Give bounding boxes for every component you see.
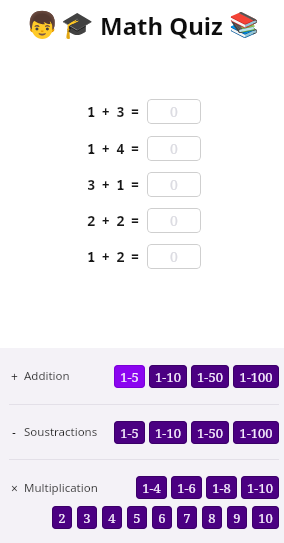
staticText: 4 xyxy=(108,509,116,527)
button[interactable]: 1-100 xyxy=(233,421,279,444)
button[interactable]: 1-10 xyxy=(149,365,187,388)
staticText: 2 xyxy=(58,509,66,527)
staticText: 0 xyxy=(170,102,178,121)
button[interactable]: 1-50 xyxy=(191,421,229,444)
button[interactable]: Answer field xyxy=(147,208,201,233)
button[interactable]: 7 xyxy=(177,506,197,529)
button[interactable]: 1-10 xyxy=(241,476,279,499)
button[interactable]: 9 xyxy=(227,506,247,529)
staticText: 1-5 xyxy=(120,368,139,386)
button[interactable]: 2 xyxy=(52,506,72,529)
button[interactable]: 1-100 xyxy=(233,365,279,388)
staticText: + xyxy=(11,368,18,384)
staticText: 1-100 xyxy=(239,368,273,386)
staticText: 9 xyxy=(233,509,241,527)
staticText: 0 xyxy=(170,247,178,266)
staticText: 1-4 xyxy=(142,479,161,497)
staticText: Addition xyxy=(24,368,70,384)
button[interactable]: 4 xyxy=(102,506,122,529)
staticText: 7 xyxy=(183,509,191,527)
staticText: 📚 xyxy=(229,11,259,39)
staticText: 1-5 xyxy=(120,424,139,442)
button[interactable]: 1-8 xyxy=(206,476,237,499)
staticText: 🎓 xyxy=(61,10,94,40)
button[interactable]: Answer field xyxy=(147,99,201,124)
button[interactable]: 1-4 xyxy=(136,476,167,499)
staticText: 10 xyxy=(258,509,273,527)
button[interactable]: 1-5 xyxy=(114,365,145,388)
staticText: 2 + 2 = xyxy=(87,211,139,230)
button[interactable]: 8 xyxy=(202,506,222,529)
button[interactable]: 3 xyxy=(77,506,97,529)
button[interactable]: Answer field xyxy=(147,136,201,161)
staticText: - xyxy=(12,424,16,440)
staticText: 1-6 xyxy=(177,479,196,497)
staticText: Math Quiz xyxy=(100,9,223,42)
button[interactable]: 1-6 xyxy=(171,476,202,499)
button[interactable]: Answer field xyxy=(147,172,201,197)
button[interactable]: 1-5 xyxy=(114,421,145,444)
staticText: Soustractions xyxy=(24,424,98,440)
staticText: 1-8 xyxy=(212,479,231,497)
staticText: 0 xyxy=(170,139,178,158)
staticText: × xyxy=(11,480,18,496)
staticText: 1-10 xyxy=(155,368,181,386)
staticText: 1-10 xyxy=(247,479,273,497)
staticText: 1-50 xyxy=(197,424,223,442)
staticText: 1-100 xyxy=(239,424,273,442)
staticText: 8 xyxy=(208,509,216,527)
staticText: 1-50 xyxy=(197,368,223,386)
staticText: 1 + 3 = xyxy=(87,102,139,121)
staticText: 1 + 2 = xyxy=(87,247,139,266)
staticText: 5 xyxy=(133,509,141,527)
button[interactable]: 1-10 xyxy=(149,421,187,444)
staticText: 1-10 xyxy=(155,424,181,442)
staticText: 1 + 4 = xyxy=(87,139,139,158)
button[interactable]: 6 xyxy=(152,506,172,529)
staticText: 3 + 1 = xyxy=(87,175,139,194)
button[interactable]: Answer field xyxy=(147,244,201,269)
staticText: 6 xyxy=(158,509,166,527)
staticText: Multiplication xyxy=(24,480,98,496)
button[interactable]: 10 xyxy=(252,506,279,529)
staticText: 👦 xyxy=(26,10,59,40)
staticText: 0 xyxy=(170,211,178,230)
button[interactable]: 1-50 xyxy=(191,365,229,388)
button[interactable]: 5 xyxy=(127,506,147,529)
staticText: 0 xyxy=(170,175,178,194)
staticText: 3 xyxy=(83,509,91,527)
